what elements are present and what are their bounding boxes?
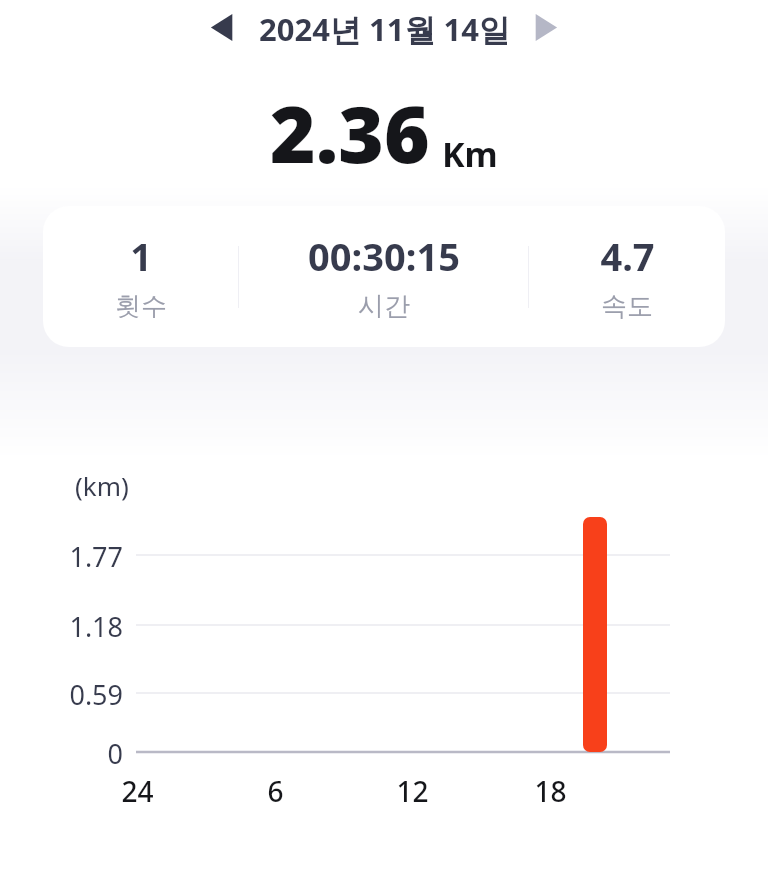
button[interactable]: 이전 날짜	[196, 2, 246, 52]
staticText: 24	[121, 772, 154, 810]
staticText: 12	[396, 772, 429, 810]
staticText: 1.77	[69, 538, 123, 575]
staticText: 0.59	[69, 676, 123, 713]
staticText: 시간	[358, 290, 410, 323]
staticText: 0	[107, 735, 123, 772]
button[interactable]: 2024년 11월 14일	[259, 8, 510, 50]
staticText: 2.36	[270, 80, 430, 186]
button[interactable]: 1	[43, 206, 725, 347]
staticText: 1	[130, 230, 152, 282]
staticText: (km)	[75, 468, 129, 503]
staticText: 18	[534, 772, 567, 810]
staticText: 1.18	[69, 608, 123, 645]
staticText: 4.7	[600, 230, 655, 282]
staticText: 00:30:15	[308, 230, 460, 282]
staticText: 속도	[601, 290, 653, 323]
staticText: 횟수	[115, 290, 167, 323]
staticText: Km	[442, 131, 498, 177]
button[interactable]: 다음 날짜	[521, 2, 571, 52]
staticText: 6	[267, 772, 284, 810]
